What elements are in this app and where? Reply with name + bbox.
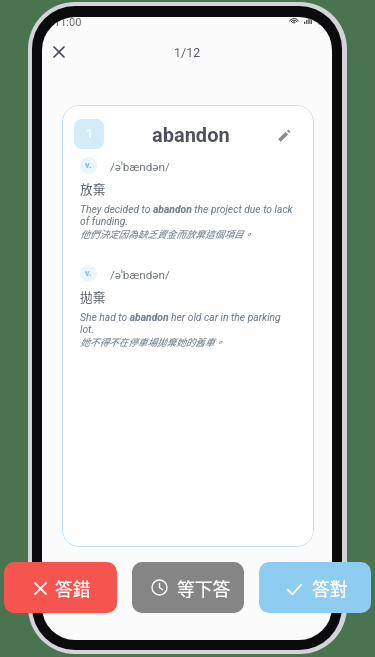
staticText: /əˈbændən/ [110,158,170,174]
staticText: She had to abandon her old car in the pa… [80,311,293,335]
staticText: 答對 [312,575,348,601]
button[interactable]: 答對 [259,562,371,613]
staticText: abandon [152,123,230,146]
staticText: 1/12 [174,45,201,60]
staticText: 放棄 [80,179,106,197]
button[interactable]: Edit [271,123,297,149]
button[interactable]: Close [43,38,75,66]
button[interactable]: 等下答 [132,562,244,613]
staticText: 等下答 [177,575,231,601]
button[interactable]: 答錯 [4,562,117,613]
staticText: 11:00 [54,17,82,29]
staticText: /əˈbændən/ [110,266,170,282]
staticText: v. [85,268,92,279]
staticText: They decided to abandon the project due … [80,203,293,227]
staticText: 1 [86,127,93,141]
staticText: 答錯 [55,575,91,601]
staticText: 她不得不在停車場拋棄她的舊車。 [80,335,224,349]
staticText: 拋棄 [80,287,106,305]
staticText: v. [85,160,92,171]
staticText: 他們決定因為缺乏資金而放棄這個項目。 [80,227,253,241]
